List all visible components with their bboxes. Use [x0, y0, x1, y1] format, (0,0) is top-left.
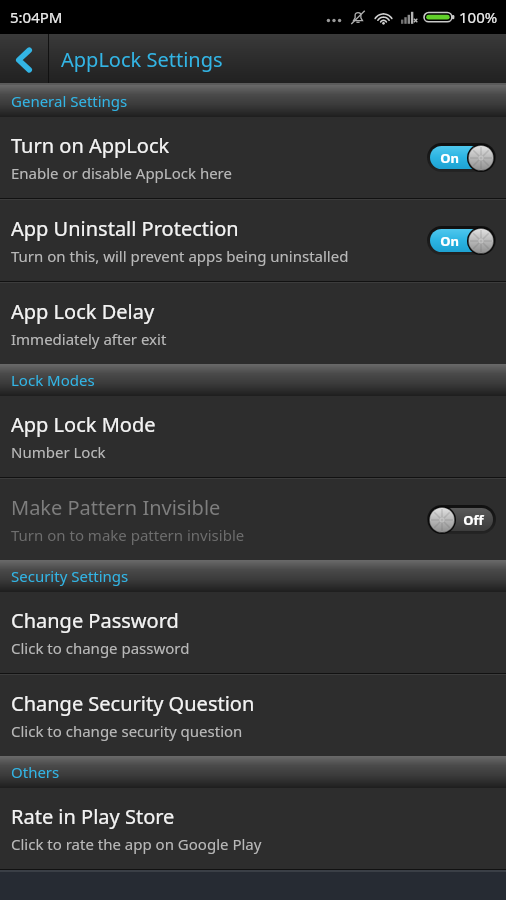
staticText: Click to rate the app on Google Play — [11, 834, 262, 854]
staticText: Security Settings — [11, 566, 129, 586]
staticText: Number Lock — [11, 442, 106, 462]
staticText: App Lock Delay — [11, 298, 155, 325]
button[interactable]: Back — [0, 34, 48, 85]
staticText: Click to change security question — [11, 721, 243, 741]
staticText: 100% — [459, 7, 498, 27]
staticText: Off — [463, 511, 484, 529]
staticText: Enable or disable AppLock here — [11, 163, 232, 183]
button[interactable]: Turn on AppLock — [0, 117, 506, 198]
staticText: Change Password — [11, 607, 179, 634]
staticText: Lock Modes — [11, 370, 95, 390]
staticText: App Lock Mode — [11, 411, 156, 438]
staticText: Others — [11, 762, 60, 782]
staticText: Click to change password — [11, 638, 190, 658]
staticText: General Settings — [11, 91, 128, 111]
staticText: AppLock Settings — [61, 46, 223, 73]
staticText: Immediately after exit — [11, 329, 167, 349]
staticText: 5:04PM — [10, 7, 63, 27]
staticText: Turn on AppLock — [11, 132, 170, 159]
staticText: Rate in Play Store — [11, 803, 175, 830]
button[interactable]: Change Security Question — [0, 675, 506, 756]
button[interactable]: Toggle on — [427, 226, 496, 255]
staticText: Turn on to make pattern invisible — [11, 525, 245, 545]
staticText: Turn on this, will prevent apps being un… — [11, 246, 349, 266]
button[interactable]: App Uninstall Protection — [0, 200, 506, 281]
staticText: Make Pattern Invisible — [11, 494, 221, 521]
button[interactable]: App Lock Delay — [0, 283, 506, 364]
button[interactable]: App Lock Mode — [0, 396, 506, 477]
button[interactable]: Rate in Play Store — [0, 788, 506, 869]
button[interactable]: Make Pattern Invisible — [0, 479, 506, 560]
staticText: On — [440, 149, 459, 167]
button[interactable]: Change Password — [0, 592, 506, 673]
staticText: Change Security Question — [11, 690, 255, 717]
staticText: On — [440, 232, 459, 250]
button[interactable]: Toggle off — [427, 505, 496, 534]
staticText: App Uninstall Protection — [11, 215, 239, 242]
button[interactable]: Toggle on — [427, 143, 496, 172]
